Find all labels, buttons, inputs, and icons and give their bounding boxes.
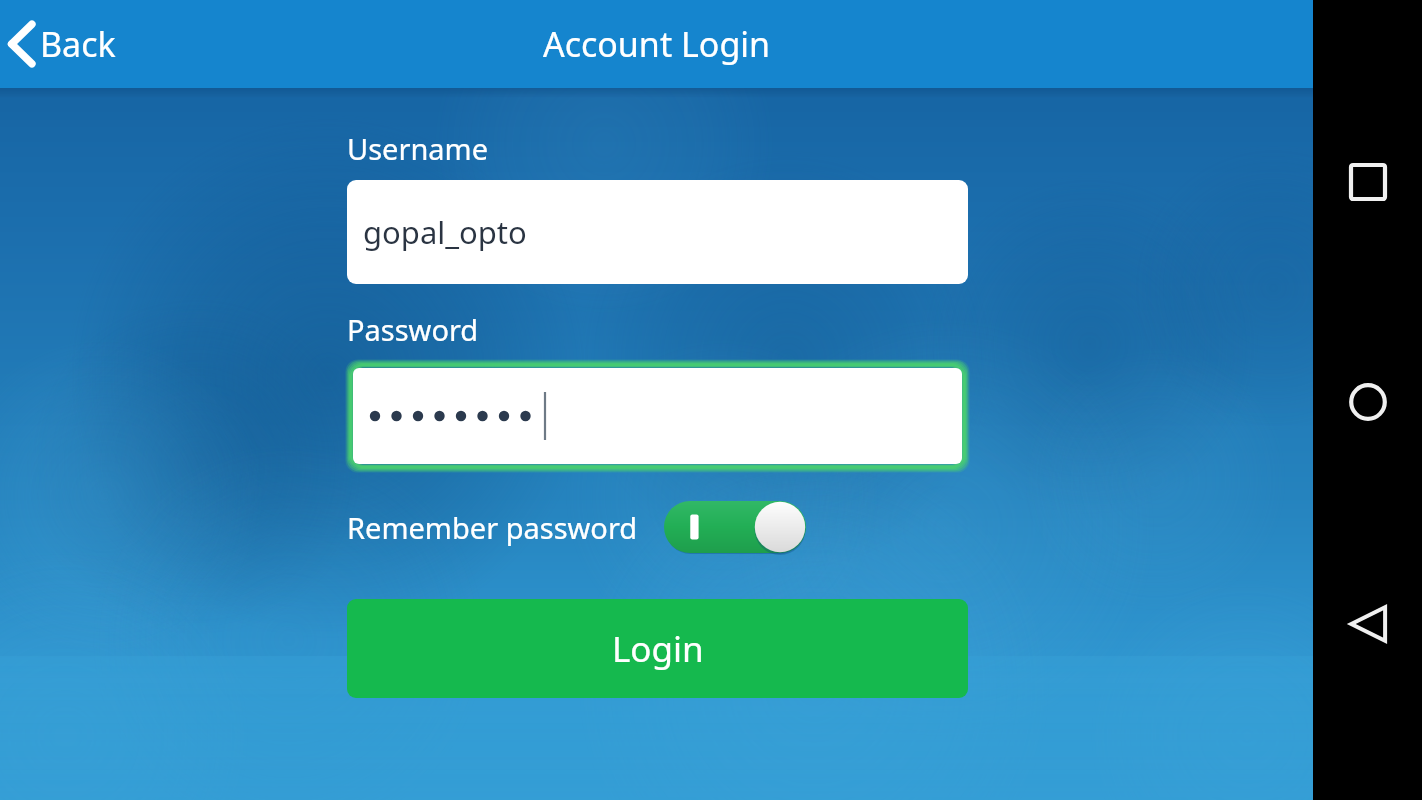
staticText: Password xyxy=(347,310,479,349)
button[interactable]: Remember password toggle, on xyxy=(664,501,806,553)
staticText: Account Login xyxy=(0,21,1313,67)
button[interactable]: Back xyxy=(1332,588,1404,660)
button[interactable] xyxy=(353,368,962,464)
staticText: Username xyxy=(347,129,489,168)
staticText: Remember password xyxy=(347,508,638,547)
button[interactable]: Back xyxy=(0,0,132,88)
button[interactable]: Home xyxy=(1332,366,1404,438)
button[interactable]: gopal_opto xyxy=(347,180,968,284)
staticText: gopal_opto xyxy=(363,211,527,253)
button[interactable]: Login xyxy=(347,599,968,698)
staticText: Back xyxy=(40,21,116,67)
staticText: Login xyxy=(612,625,704,673)
button[interactable]: Recent apps xyxy=(1332,146,1404,218)
